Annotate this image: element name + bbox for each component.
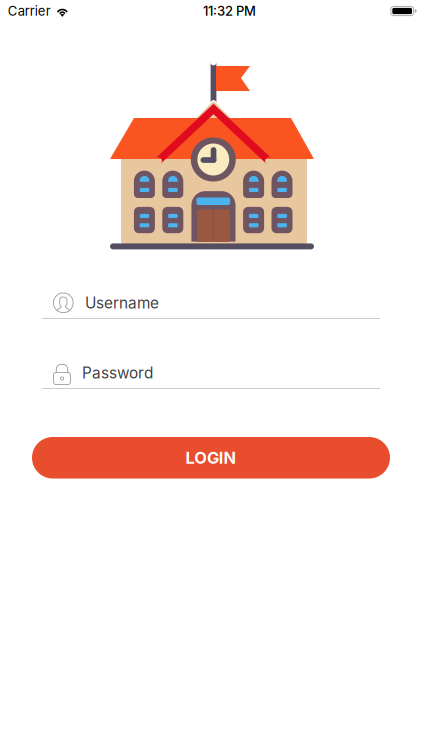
staticText: Carrier: [8, 3, 51, 19]
staticText: Username: [85, 294, 159, 312]
button[interactable]: LOGIN: [32, 437, 390, 478]
staticText: 11:32 PM: [203, 3, 256, 19]
staticText: Password: [82, 364, 153, 382]
staticText: LOGIN: [186, 448, 236, 468]
